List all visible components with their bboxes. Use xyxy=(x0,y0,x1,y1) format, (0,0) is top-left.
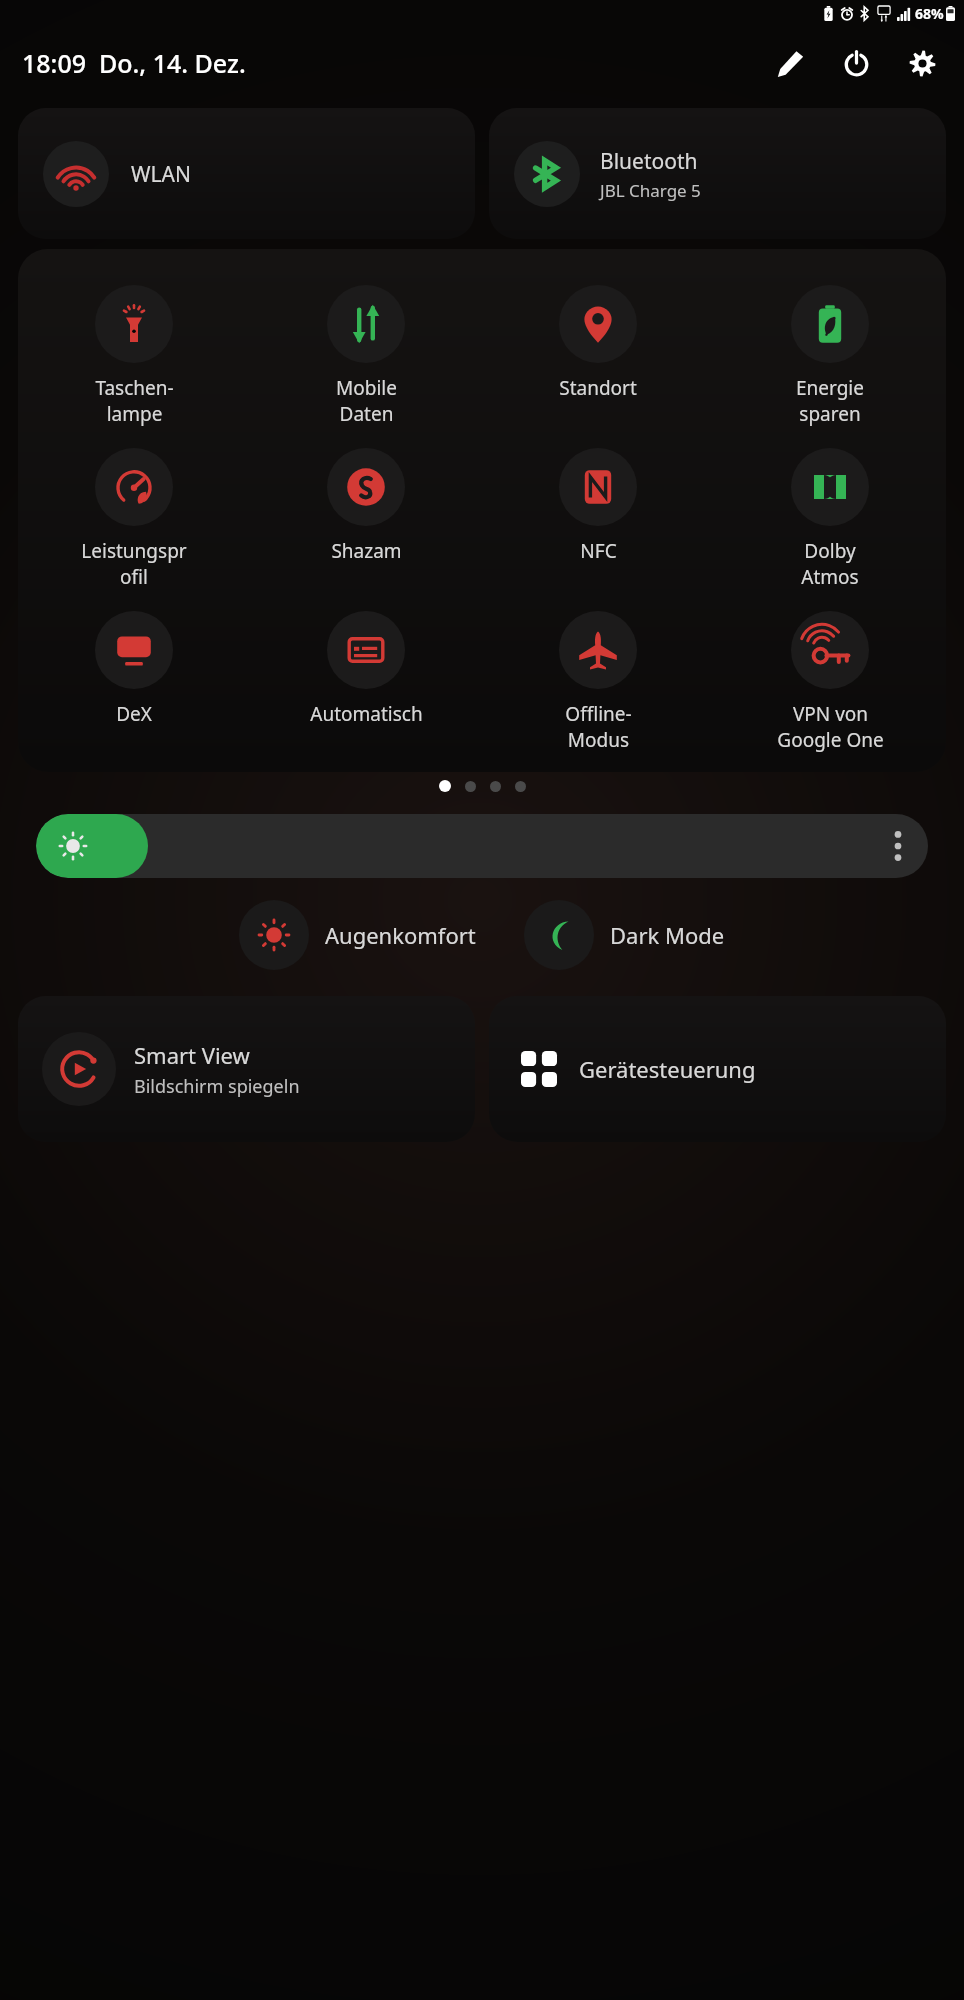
staticText: Standort xyxy=(559,375,637,401)
button[interactable]: NFC xyxy=(482,446,714,566)
staticText: Taschen- lampe xyxy=(95,375,174,426)
staticText: Dolby Atmos xyxy=(801,538,859,589)
button[interactable]: Standort xyxy=(482,283,714,403)
button[interactable]: Taschen- lampe xyxy=(18,283,250,428)
staticText: Smart View xyxy=(134,1040,250,1070)
button[interactable]: Power xyxy=(834,41,878,85)
button[interactable]: Smart View xyxy=(18,996,475,1142)
button[interactable]: Edit xyxy=(768,41,812,85)
button[interactable]: WLAN xyxy=(18,108,475,239)
staticText: Gerätesteuerung xyxy=(579,1054,756,1084)
staticText: Augenkomfort xyxy=(325,920,476,950)
staticText: Automatisch xyxy=(310,701,423,727)
staticText: JBL Charge 5 xyxy=(600,179,701,202)
staticText: Dark Mode xyxy=(610,920,725,950)
button[interactable]: Brightness xyxy=(36,814,928,878)
staticText: VPN von Google One xyxy=(777,701,884,752)
button[interactable]: Settings xyxy=(900,41,944,85)
button[interactable]: Energie sparen xyxy=(714,283,946,428)
button[interactable]: Augenkomfort xyxy=(235,896,480,974)
staticText: Bluetooth xyxy=(600,147,698,176)
staticText: 68% xyxy=(915,4,944,23)
button[interactable]: Dolby Atmos xyxy=(714,446,946,591)
staticText: NFC xyxy=(580,538,617,564)
staticText: 18:09 xyxy=(22,46,87,80)
button[interactable]: Bluetooth xyxy=(489,108,946,239)
button[interactable]: Offline- Modus xyxy=(482,609,714,754)
button[interactable]: VPN von Google One xyxy=(714,609,946,754)
staticText: WLAN xyxy=(131,160,191,189)
staticText: Energie sparen xyxy=(796,375,864,426)
button[interactable]: DeX xyxy=(18,609,250,729)
staticText: Offline- Modus xyxy=(565,701,632,752)
staticText: DeX xyxy=(116,701,152,727)
staticText: Mobile Daten xyxy=(336,375,397,426)
button[interactable]: Automatisch xyxy=(250,609,482,729)
staticText: Do., 14. Dez. xyxy=(99,46,246,80)
button[interactable]: Dark Mode xyxy=(520,896,729,974)
button[interactable]: Leistungspr ofil xyxy=(18,446,250,591)
button[interactable]: Gerätesteuerung xyxy=(489,996,946,1142)
staticText: Shazam xyxy=(331,538,402,564)
button[interactable]: Shazam xyxy=(250,446,482,566)
staticText: Leistungspr ofil xyxy=(81,538,187,589)
staticText: Bildschirm spiegeln xyxy=(134,1074,300,1099)
button[interactable]: Mobile Daten xyxy=(250,283,482,428)
